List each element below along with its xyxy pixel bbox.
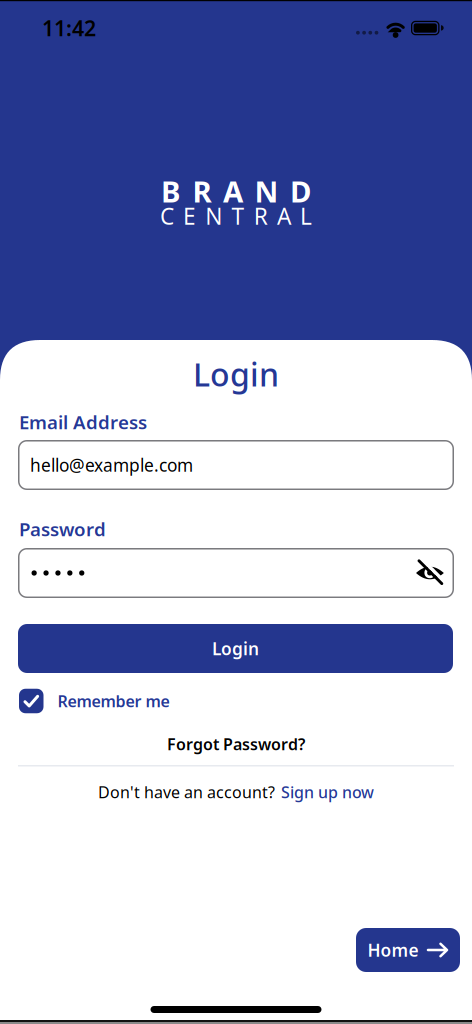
staticText: R xyxy=(254,201,268,231)
staticText: N xyxy=(205,201,222,231)
staticText: 11:42 xyxy=(42,14,96,42)
button[interactable] xyxy=(18,548,454,598)
staticText: Login xyxy=(212,637,259,660)
button[interactable]: Show password xyxy=(412,555,448,591)
staticText: Forgot Password? xyxy=(167,733,305,755)
staticText: E xyxy=(183,201,196,231)
button[interactable]: Forgot Password? xyxy=(0,733,472,755)
button[interactable]: Sign up now xyxy=(281,781,374,803)
button[interactable]: Home xyxy=(356,928,460,972)
staticText: B xyxy=(161,171,181,210)
staticText: Don't have an account? xyxy=(98,781,275,803)
staticText: L xyxy=(300,201,312,231)
button[interactable]: Remember me xyxy=(19,687,169,715)
staticText: Email Address xyxy=(19,410,147,434)
staticText: D xyxy=(290,171,311,210)
staticText: A xyxy=(223,171,243,210)
staticText: Home xyxy=(367,938,418,961)
staticText: Password xyxy=(19,517,106,541)
button[interactable]: Login xyxy=(18,624,453,673)
staticText: Sign up now xyxy=(281,781,374,803)
staticText: R xyxy=(192,171,211,210)
staticText: Remember me xyxy=(57,690,169,712)
staticText: hello@example.com xyxy=(30,453,193,476)
staticText: A xyxy=(277,201,291,231)
staticText: C xyxy=(160,201,174,231)
staticText: T xyxy=(231,201,244,231)
button[interactable]: hello@example.com xyxy=(18,440,454,490)
staticText: N xyxy=(254,171,278,210)
staticText: Login xyxy=(193,353,279,395)
